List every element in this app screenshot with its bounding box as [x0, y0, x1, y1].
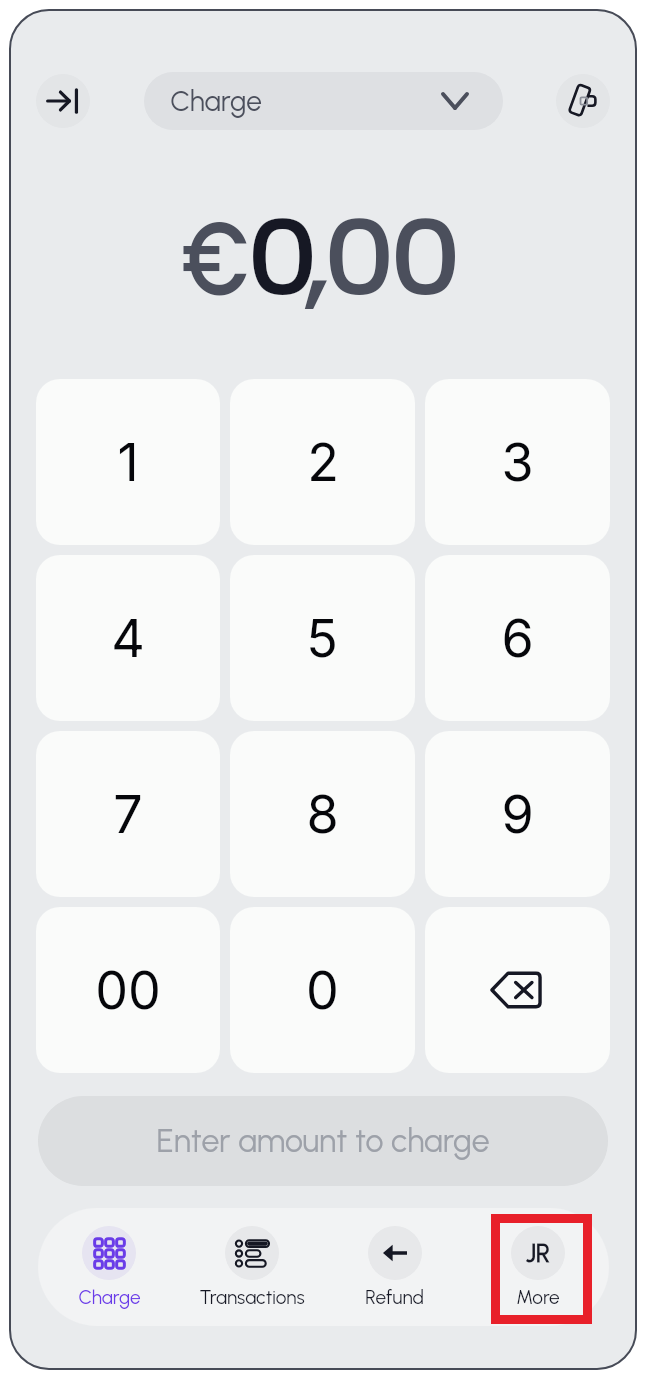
staticText: More: [516, 1286, 560, 1309]
staticText: €: [181, 186, 249, 332]
staticText: 9: [501, 783, 534, 846]
button[interactable]: 3: [425, 379, 610, 545]
staticText: 00: [95, 959, 161, 1022]
button[interactable]: 8: [230, 731, 415, 897]
staticText: Transactions: [199, 1286, 305, 1309]
staticText: Refund: [365, 1286, 424, 1309]
staticText: 7: [113, 783, 143, 846]
button[interactable]: JR: [466, 1226, 609, 1309]
button[interactable]: Enter amount to charge: [38, 1096, 608, 1186]
button[interactable]: Sign out: [36, 74, 90, 128]
button[interactable]: Delete: [425, 907, 610, 1073]
staticText: Enter amount to charge: [156, 1122, 490, 1160]
staticText: Charge: [170, 84, 262, 118]
staticText: 5: [307, 607, 338, 670]
button[interactable]: Transactions: [180, 1226, 323, 1309]
staticText: 4: [111, 607, 145, 670]
staticText: 0: [246, 186, 312, 332]
staticText: ,00: [304, 186, 455, 332]
button[interactable]: 0: [230, 907, 415, 1073]
button[interactable]: 4: [36, 555, 220, 721]
staticText: 6: [501, 607, 534, 670]
button[interactable]: 5: [230, 555, 415, 721]
button[interactable]: Charge: [144, 72, 503, 130]
staticText: 1: [117, 431, 139, 494]
button[interactable]: 7: [36, 731, 220, 897]
staticText: 8: [306, 783, 339, 846]
staticText: 3: [501, 431, 534, 494]
button[interactable]: 9: [425, 731, 610, 897]
button[interactable]: 6: [425, 555, 610, 721]
staticText: JR: [526, 1238, 550, 1268]
staticText: 0: [306, 959, 339, 1022]
button[interactable]: Refund: [323, 1226, 466, 1309]
staticText: 2: [307, 431, 339, 494]
button[interactable]: 1: [36, 379, 220, 545]
button[interactable]: 00: [36, 907, 220, 1073]
staticText: Charge: [78, 1286, 141, 1309]
button[interactable]: 2: [230, 379, 415, 545]
button[interactable]: Charge: [38, 1226, 180, 1309]
button[interactable]: Tap to pay: [556, 74, 610, 128]
